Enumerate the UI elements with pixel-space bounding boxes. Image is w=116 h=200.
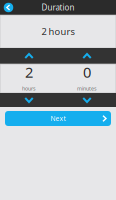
button[interactable]: Next — [5, 111, 111, 126]
staticText: Duration — [41, 2, 74, 13]
staticText: hours — [22, 85, 36, 92]
button[interactable]: Decrease minutes — [58, 93, 116, 107]
staticText: 0 — [83, 62, 91, 82]
staticText: Next — [50, 114, 65, 123]
button[interactable]: Decrease hours — [0, 93, 58, 107]
staticText: 2 hours — [41, 25, 74, 38]
button[interactable]: Increase hours — [0, 48, 58, 64]
button[interactable]: Back — [2, 0, 15, 15]
button[interactable]: Increase minutes — [58, 48, 116, 64]
staticText: 2 — [25, 62, 33, 82]
staticText: minutes — [77, 85, 97, 92]
